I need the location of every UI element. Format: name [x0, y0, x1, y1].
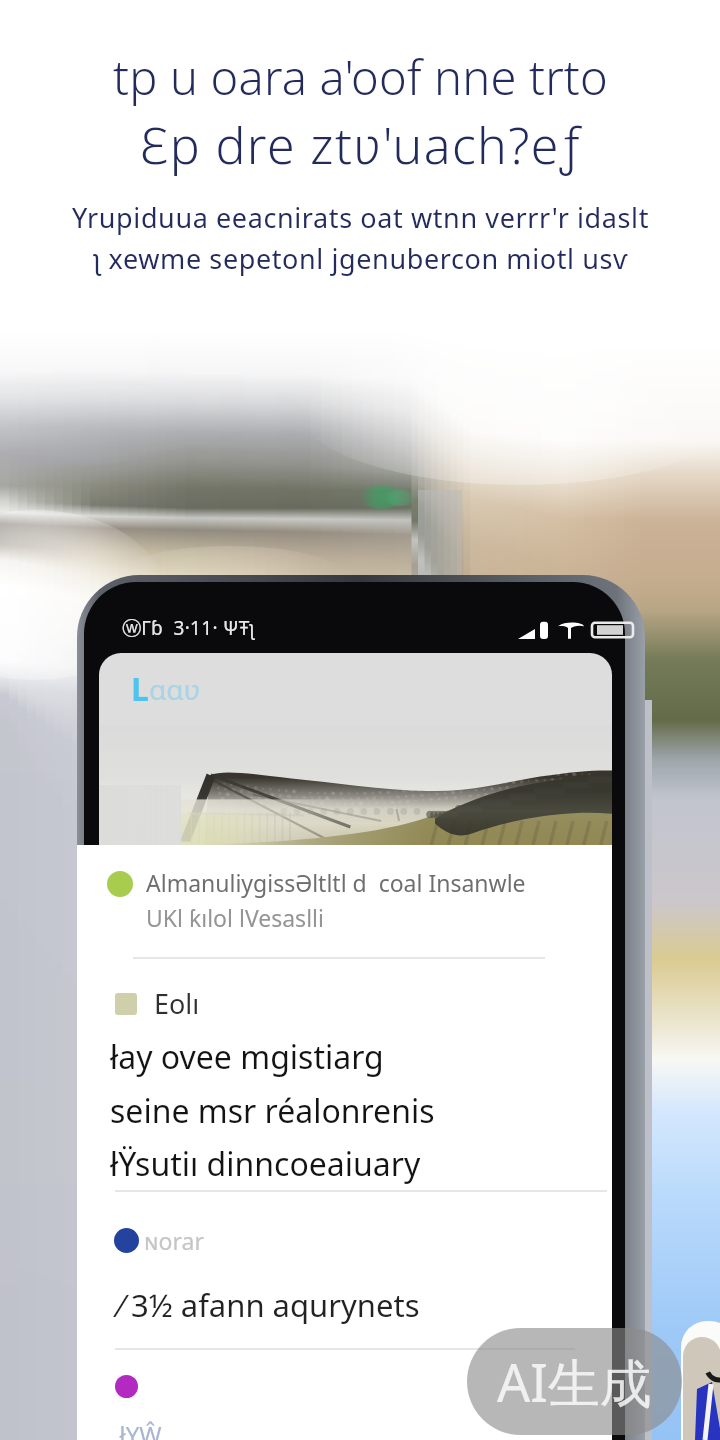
- staticText: łYŴ: [107, 1418, 175, 1440]
- staticText: ⁄ 3½ afann aqurynets: [119, 1284, 420, 1326]
- staticText: ʅ xewme sepetonl jgenubercon miotl usѵ: [93, 240, 628, 277]
- staticText: UKl ƙılol lVesaslli: [146, 902, 324, 933]
- staticText: Eolı: [154, 985, 200, 1022]
- staticText: Ɛp dre ztʋ'uach?eƒ: [140, 111, 581, 179]
- staticText: L: [131, 667, 149, 711]
- button[interactable]: ɴorar: [107, 1225, 577, 1326]
- staticText: tp u oara a'oof nne trto: [113, 45, 608, 109]
- button[interactable]: łay ovee mgistiarg: [110, 1035, 580, 1186]
- staticText: AlmanuliyɡissƏltltl d coal Insanwle: [146, 867, 526, 898]
- staticText: ɴorar: [144, 1225, 204, 1256]
- other: AI generated: [467, 1328, 682, 1435]
- staticText: Yrupiduua eeacnirats oat wtnn verrr'r id…: [72, 199, 649, 236]
- staticText: ɑɑʋ: [149, 670, 201, 708]
- staticText: AI生成: [497, 1346, 652, 1417]
- staticText: łay ovee mgistiarg: [110, 1035, 384, 1079]
- button[interactable]: Eolı: [115, 985, 415, 1022]
- staticText: łŸsutiı dinncoeaiuary: [110, 1142, 421, 1186]
- staticText: ⓦΓɓ 3·11· ѰŦʅ: [122, 615, 255, 641]
- button[interactable]: łYŴ: [107, 1375, 577, 1440]
- staticText: seine msr réalonrenis: [110, 1089, 435, 1133]
- button[interactable]: AlmanuliyɡissƏltltl d coal Insanwle: [107, 867, 577, 933]
